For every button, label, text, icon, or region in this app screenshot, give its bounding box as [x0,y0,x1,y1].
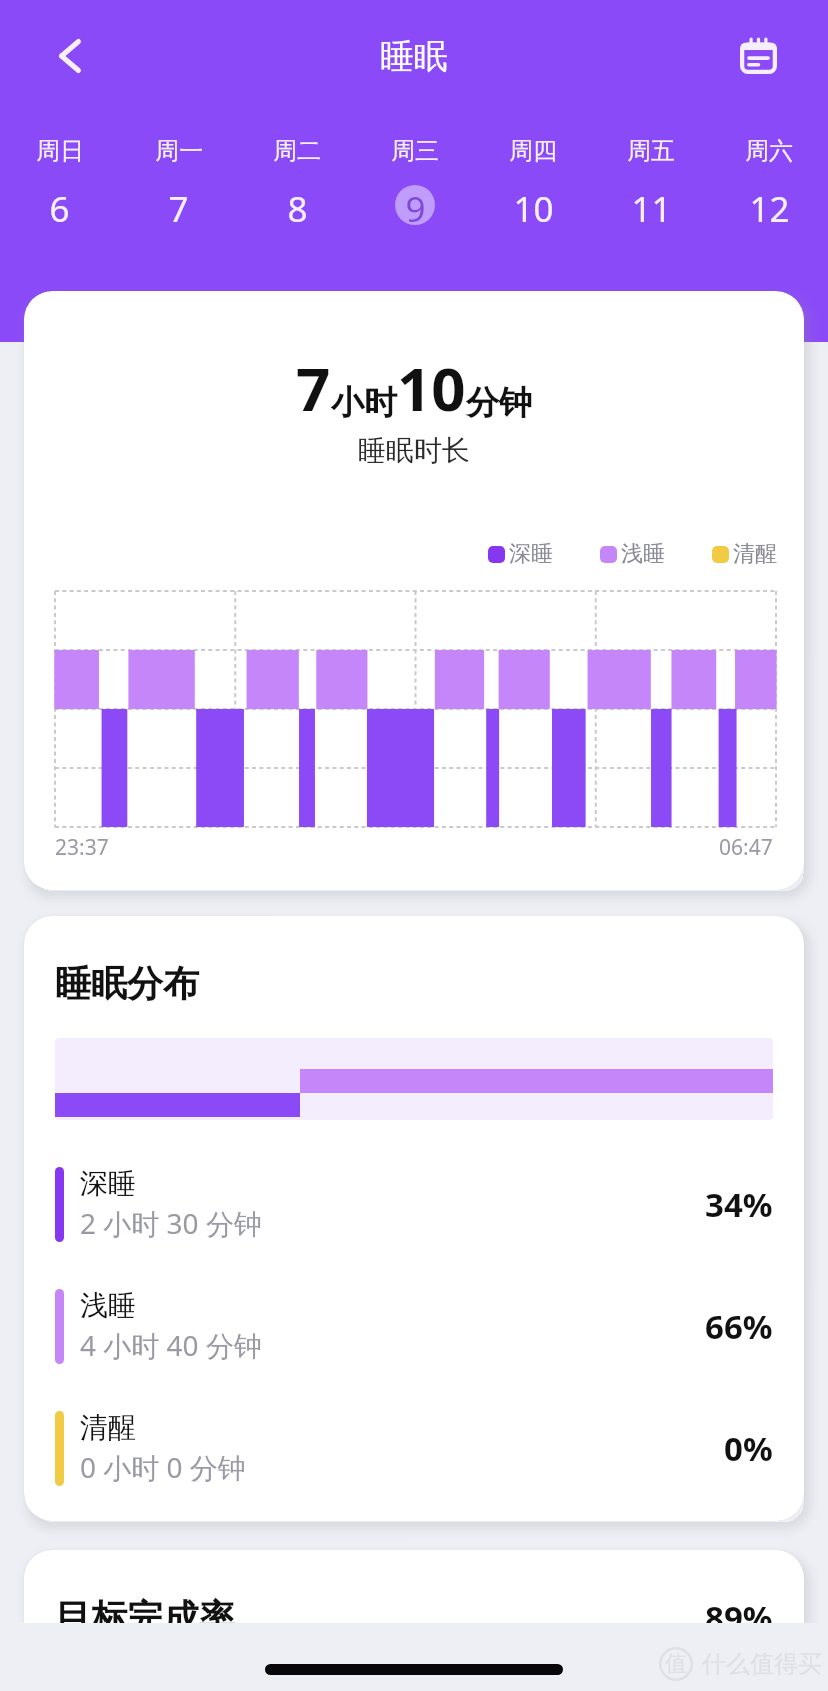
staticText: 12 [749,185,790,225]
button[interactable]: 周六 [710,136,828,225]
staticText: 分钟 [466,382,532,424]
staticText: 什么值得买 [702,1649,822,1679]
staticText: 10 [513,185,554,225]
staticText: 深睡 [509,540,553,568]
button[interactable]: 周四 [474,136,592,225]
staticText: 清醒 [80,1410,136,1445]
staticText: 值 [665,1650,687,1678]
staticText: 周日 [36,136,84,166]
staticText: 周五 [627,136,675,166]
staticText: 小时 [331,382,397,424]
button[interactable]: Calendar [718,16,798,96]
staticText: 睡眠 [380,35,448,78]
staticText: 06:47 [719,833,773,862]
staticText: 周六 [745,136,793,166]
staticText: 睡眠时长 [358,433,470,468]
staticText: 周四 [509,136,557,166]
staticText: 2 小时 30 分钟 [80,1204,262,1242]
staticText: 周三 [391,136,439,166]
staticText: 23:37 [55,833,109,862]
staticText: 周一 [155,136,203,166]
staticText: 4 小时 40 分钟 [80,1326,262,1364]
staticText: 66% [705,1304,773,1349]
staticText: 清醒 [733,540,777,568]
button[interactable]: 深睡 [55,1166,773,1242]
staticText: 34% [705,1182,773,1227]
staticText: 0 小时 0 分钟 [80,1448,246,1486]
staticText: 10 [397,347,466,429]
button[interactable]: 周二 [238,136,356,225]
staticText: 8 [287,185,308,225]
staticText: 89% [705,1595,773,1640]
staticText: 睡眠分布 [55,961,199,1006]
staticText: 11 [631,185,672,225]
staticText: 深睡 [80,1166,136,1201]
staticText: 0% [724,1426,773,1471]
staticText: 9 [405,185,426,225]
button[interactable]: 清醒 [55,1410,773,1486]
button[interactable]: 周三 [356,136,474,225]
button[interactable]: 周五 [592,136,710,225]
staticText: 周二 [273,136,321,166]
button[interactable]: 周一 [119,136,238,225]
button[interactable]: 浅睡 [55,1288,773,1364]
staticText: 7 [168,185,189,225]
staticText: 目标完成率 [55,1595,235,1640]
button[interactable]: 周日 [0,136,119,225]
staticText: 7 [296,347,331,429]
staticText: 浅睡 [621,540,665,568]
staticText: 6 [49,185,70,225]
button[interactable]: Back [30,16,110,96]
staticText: 浅睡 [80,1288,136,1323]
